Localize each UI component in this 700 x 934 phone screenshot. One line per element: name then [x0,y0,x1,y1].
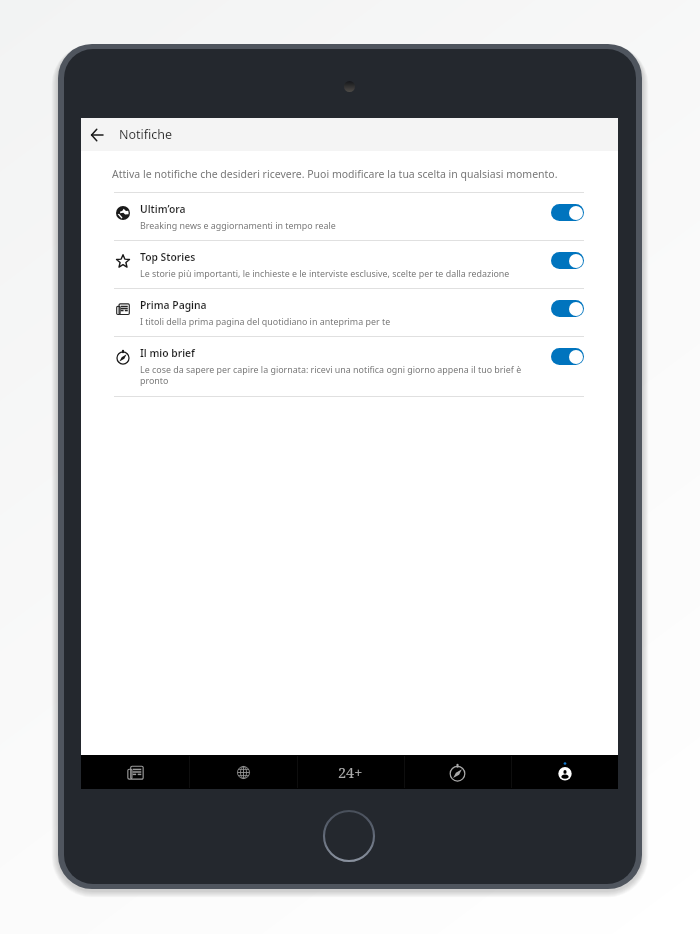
button[interactable]: World [189,755,297,789]
staticText: Attiva le notifiche che desideri ricever… [112,167,558,181]
button[interactable]: Top Stories [114,241,584,288]
button[interactable]: Il mio brief [114,337,584,396]
staticText: Prima Pagina [140,298,207,312]
button[interactable]: Toggle [551,300,584,317]
staticText: Le storie più importanti, le inchieste e… [140,267,510,279]
staticText: Il mio brief [140,346,195,360]
button[interactable]: Back [86,124,108,146]
staticText: Notifiche [119,126,173,143]
button[interactable]: Toggle [551,252,584,269]
staticText: Breaking news e aggiornamenti in tempo r… [140,219,336,231]
button[interactable]: Discover [404,755,511,789]
button[interactable]: News [81,755,189,789]
button[interactable]: Toggle [551,348,584,365]
staticText: 24+ [338,762,363,782]
button[interactable]: 24+ [297,755,404,789]
button[interactable]: Profile [511,755,618,789]
staticText: Top Stories [140,250,196,264]
button[interactable]: Prima Pagina [114,289,584,336]
staticText: Le cose da sapere per capire la giornata… [140,363,539,387]
button[interactable]: Toggle [551,204,584,221]
staticText: Ultim’ora [140,202,186,216]
button[interactable]: Ultim’ora [114,193,584,240]
staticText: I titoli della prima pagina del quotidia… [140,315,391,327]
